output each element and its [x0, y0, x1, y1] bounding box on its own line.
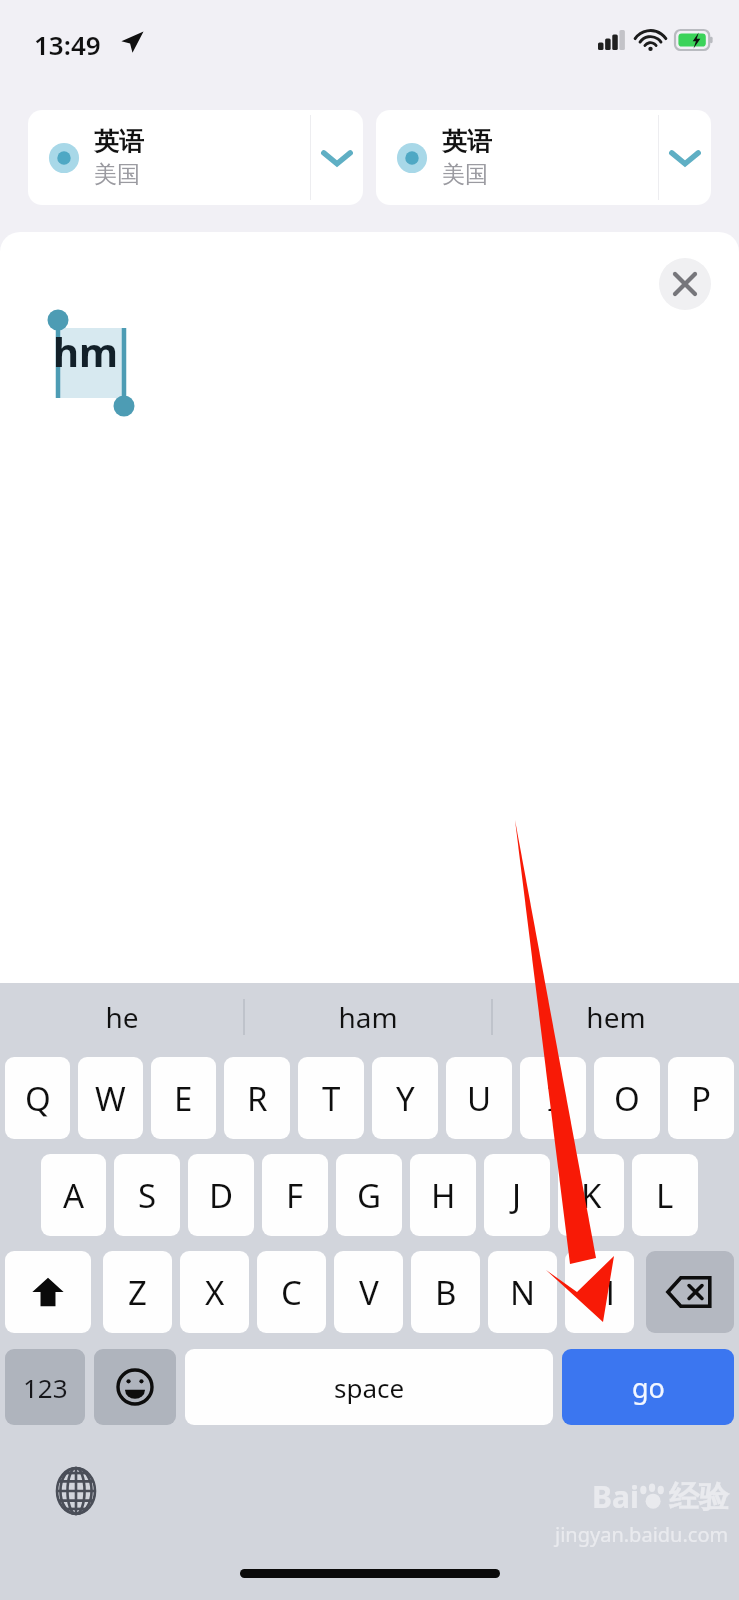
button[interactable]: E — [151, 1057, 216, 1139]
button[interactable]: 英语 — [376, 110, 658, 205]
staticText: P — [691, 1076, 711, 1121]
staticText: space — [334, 1370, 405, 1405]
staticText: Y — [396, 1076, 415, 1121]
staticText: 英语 — [94, 126, 144, 157]
button[interactable]: O — [594, 1057, 660, 1139]
staticText: A — [63, 1173, 85, 1218]
staticText: G — [357, 1173, 382, 1218]
button[interactable]: S — [114, 1154, 180, 1236]
staticText: N — [510, 1270, 536, 1315]
button[interactable]: 123 — [5, 1349, 85, 1425]
staticText: O — [614, 1076, 640, 1121]
staticText: Z — [128, 1270, 147, 1315]
staticText: D — [209, 1173, 234, 1218]
button[interactable]: he — [0, 983, 243, 1050]
staticText: hem — [586, 998, 646, 1036]
staticText: W — [95, 1076, 126, 1121]
button[interactable]: hem — [493, 983, 739, 1050]
button[interactable]: Expand language list — [659, 110, 711, 205]
staticText: hm — [53, 324, 118, 378]
staticText: 美国 — [94, 160, 140, 189]
button[interactable]: Q — [5, 1057, 70, 1139]
button[interactable]: 英语 — [28, 110, 310, 205]
staticText: 英语 — [442, 126, 492, 157]
staticText: H — [431, 1173, 456, 1218]
staticText: Q — [25, 1076, 51, 1121]
staticText: I — [547, 1076, 559, 1121]
button[interactable]: A — [41, 1154, 106, 1236]
staticText: Bai — [592, 1476, 639, 1517]
staticText: jingyan.baidu.com — [555, 1521, 729, 1548]
button[interactable]: go — [562, 1349, 734, 1425]
staticText: T — [322, 1076, 341, 1121]
button[interactable]: ham — [245, 983, 491, 1050]
button[interactable]: G — [336, 1154, 402, 1236]
staticText: S — [138, 1173, 157, 1218]
staticText: 经验 — [669, 1478, 729, 1516]
button[interactable]: N — [488, 1251, 557, 1333]
button[interactable]: L — [632, 1154, 698, 1236]
button[interactable]: V — [334, 1251, 403, 1333]
button[interactable]: T — [298, 1057, 364, 1139]
staticText: L — [656, 1173, 674, 1218]
staticText: F — [286, 1173, 304, 1218]
staticText: C — [281, 1270, 302, 1315]
staticText: 美国 — [442, 160, 488, 189]
button[interactable]: J — [484, 1154, 550, 1236]
button[interactable]: X — [180, 1251, 249, 1333]
staticText: ham — [338, 998, 398, 1036]
staticText: U — [467, 1076, 492, 1121]
staticText: R — [247, 1076, 268, 1121]
staticText: go — [632, 1369, 665, 1406]
button[interactable]: C — [257, 1251, 326, 1333]
staticText: M — [585, 1270, 615, 1315]
staticText: 13:49 — [34, 27, 101, 62]
button[interactable]: P — [668, 1057, 734, 1139]
staticText: he — [105, 998, 139, 1036]
staticText: B — [435, 1270, 457, 1315]
button[interactable]: D — [188, 1154, 254, 1236]
button[interactable]: W — [78, 1057, 143, 1139]
staticText: 123 — [23, 1370, 68, 1405]
button[interactable]: Emoji keyboard — [94, 1349, 176, 1425]
button[interactable]: H — [410, 1154, 476, 1236]
button[interactable]: B — [411, 1251, 480, 1333]
staticText: J — [512, 1173, 522, 1218]
button[interactable]: Backspace — [646, 1251, 734, 1333]
button[interactable]: U — [446, 1057, 512, 1139]
button[interactable]: R — [224, 1057, 290, 1139]
button[interactable]: F — [262, 1154, 328, 1236]
staticText: V — [359, 1270, 379, 1315]
button[interactable]: K — [558, 1154, 624, 1236]
button[interactable]: space — [185, 1349, 553, 1425]
button[interactable]: Expand language list — [311, 110, 363, 205]
staticText: E — [174, 1076, 193, 1121]
button[interactable]: I — [520, 1057, 586, 1139]
staticText: X — [205, 1270, 225, 1315]
button[interactable]: M — [565, 1251, 634, 1333]
button[interactable]: Change keyboard language — [48, 1463, 104, 1519]
button[interactable]: Close — [659, 258, 711, 310]
staticText: K — [581, 1173, 602, 1218]
button[interactable]: Z — [103, 1251, 172, 1333]
button[interactable]: Shift — [5, 1251, 91, 1333]
button[interactable]: Y — [372, 1057, 438, 1139]
